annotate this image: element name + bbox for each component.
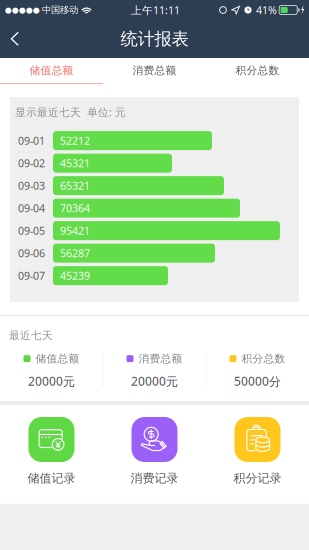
- staticText: 09-04: [18, 201, 45, 215]
- staticText: 41%: [256, 3, 277, 17]
- staticText: 统计报表: [120, 28, 188, 50]
- staticText: 20000元: [28, 373, 75, 389]
- staticText: 09-06: [18, 246, 45, 260]
- staticText: 积分总数: [241, 352, 285, 365]
- staticText: 95421: [60, 224, 90, 238]
- staticText: 50000分: [234, 373, 281, 389]
- staticText: 20000元: [131, 373, 178, 389]
- staticText: 52212: [60, 134, 90, 148]
- button[interactable]: 消费记录: [103, 417, 206, 486]
- button[interactable]: 消费总额: [103, 58, 206, 83]
- staticText: 显示最近七天 单位: 元: [15, 105, 126, 119]
- staticText: 09-05: [18, 224, 45, 238]
- staticText: 消费记录: [130, 471, 178, 486]
- button[interactable]: 储值记录: [0, 417, 103, 486]
- staticText: 消费总额: [138, 352, 182, 365]
- staticText: 积分记录: [233, 471, 281, 486]
- staticText: 45321: [60, 156, 90, 170]
- staticText: 储值总额: [29, 64, 73, 77]
- staticText: 最近七天: [9, 329, 53, 342]
- staticText: 09-01: [18, 134, 45, 148]
- button[interactable]: 储值总额: [0, 58, 103, 83]
- staticText: ●●●●●: [5, 5, 40, 15]
- button[interactable]: 积分总数: [206, 58, 309, 83]
- staticText: 09-03: [18, 179, 45, 193]
- staticText: 储值记录: [27, 471, 75, 486]
- button[interactable]: 积分记录: [206, 417, 309, 486]
- staticText: 消费总额: [132, 64, 176, 77]
- staticText: 09-07: [18, 269, 45, 283]
- staticText: 56287: [60, 246, 90, 260]
- staticText: 45239: [60, 269, 90, 283]
- staticText: 65321: [60, 179, 90, 193]
- staticText: 中国移动: [42, 4, 78, 16]
- staticText: 09-02: [18, 156, 45, 170]
- staticText: 70364: [60, 201, 90, 215]
- staticText: 储值总额: [35, 352, 79, 365]
- staticText: 积分总数: [235, 64, 279, 77]
- staticText: 上午11:11: [131, 3, 180, 17]
- button[interactable]: 返回: [0, 20, 34, 58]
